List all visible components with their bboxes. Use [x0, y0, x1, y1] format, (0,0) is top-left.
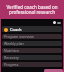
button[interactable]: Coach	[2, 26, 62, 32]
staticText: Coach	[10, 27, 22, 32]
staticText: Nutrition	[4, 48, 19, 53]
button[interactable]: Program overview	[2, 34, 62, 39]
button[interactable]: Account	[53, 21, 56, 24]
button[interactable]: Weekly plan	[2, 41, 62, 46]
button[interactable]: Recovery	[2, 55, 62, 60]
button[interactable]: More	[57, 22, 61, 24]
staticText: Verified coach based on professional res…	[3, 4, 61, 16]
button[interactable]: Start	[44, 69, 63, 72]
button[interactable]: Progress	[2, 62, 62, 67]
button[interactable]: Nutrition	[2, 48, 62, 53]
staticText: Weekly plan	[4, 41, 24, 46]
staticText: Recovery	[4, 55, 19, 60]
staticText: Program overview	[4, 34, 34, 39]
staticText: Progress	[4, 62, 19, 67]
